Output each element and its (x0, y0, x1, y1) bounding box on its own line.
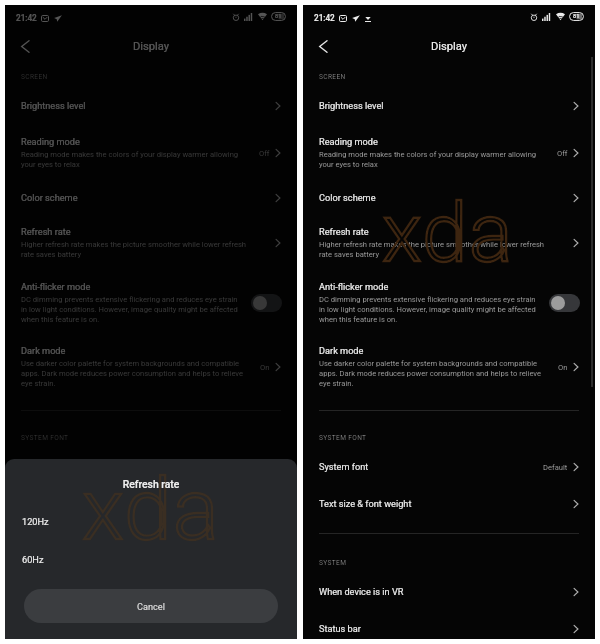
staticText: Cancel (137, 601, 165, 612)
button[interactable]: Color scheme (303, 190, 595, 206)
staticText: SYSTEM (319, 559, 347, 567)
button[interactable]: Brightness level (5, 98, 297, 114)
button[interactable]: Back (310, 33, 336, 59)
staticText: Anti-flicker mode (319, 281, 389, 292)
staticText: Text size & font weight (21, 498, 114, 509)
staticText: Brightness level (21, 100, 86, 111)
staticText: Anti-flicker mode (21, 281, 91, 292)
button[interactable]: Refresh rate (5, 224, 297, 262)
staticText: 21:42 (16, 13, 37, 23)
button[interactable]: Back (12, 33, 38, 59)
staticText: 120Hz (22, 516, 49, 527)
staticText: xda (82, 459, 220, 560)
button[interactable]: Reading mode (303, 134, 595, 172)
staticText: Higher refresh rate makes the picture sm… (319, 240, 545, 259)
staticText: SYSTEM (21, 559, 49, 567)
button[interactable]: System font (5, 459, 297, 475)
button[interactable]: Anti-flicker mode (303, 279, 595, 327)
button[interactable]: Anti-flicker mode toggle (549, 294, 580, 312)
staticText: Display (431, 40, 468, 53)
staticText: Color scheme (319, 192, 376, 203)
button[interactable]: Text size & font weight (5, 496, 297, 512)
button[interactable]: Dark mode (5, 343, 297, 391)
staticText: Reading mode (319, 136, 378, 147)
button[interactable]: System font (303, 459, 595, 475)
staticText: On (558, 363, 568, 372)
staticText: Refresh rate (21, 226, 71, 237)
staticText: Reading mode (21, 136, 80, 147)
button[interactable]: Status bar (5, 621, 297, 637)
staticText: DC dimming prevents extensive flickering… (319, 295, 536, 324)
button[interactable]: Anti-flicker mode toggle (251, 294, 282, 312)
staticText: On (260, 363, 270, 372)
button[interactable]: 120Hz (5, 510, 297, 544)
staticText: System font (319, 461, 369, 472)
staticText: Off (259, 149, 270, 158)
staticText: 21:42 (314, 13, 335, 23)
button[interactable]: Color scheme (5, 190, 297, 206)
button[interactable]: 60Hz (5, 548, 297, 582)
button[interactable]: Brightness level (303, 98, 595, 114)
staticText: Color scheme (21, 192, 78, 203)
staticText: Off (557, 149, 568, 158)
staticText: Reading mode makes the colors of your di… (319, 150, 537, 169)
staticText: 81 (573, 13, 580, 20)
button[interactable]: Status bar (303, 621, 595, 637)
staticText: SYSTEM FONT (21, 434, 69, 442)
staticText: Display (133, 40, 170, 53)
staticText: When device is in VR (319, 586, 404, 597)
staticText: 81 (275, 13, 282, 20)
button[interactable]: Reading mode (5, 134, 297, 172)
staticText: Use darker color palette for system back… (319, 359, 542, 388)
button[interactable]: Dark mode (303, 343, 595, 391)
button[interactable]: Refresh rate (303, 224, 595, 262)
staticText: Higher refresh rate makes the picture sm… (21, 240, 247, 259)
staticText: Status bar (319, 623, 361, 634)
staticText: When device is in VR (21, 586, 106, 597)
staticText: Brightness level (319, 100, 384, 111)
staticText: Reading mode makes the colors of your di… (21, 150, 239, 169)
staticText: Use darker color palette for system back… (21, 359, 244, 388)
button[interactable]: When device is in VR (303, 584, 595, 600)
staticText: Dark mode (319, 345, 364, 356)
button[interactable]: Text size & font weight (303, 496, 595, 512)
button[interactable]: When device is in VR (5, 584, 297, 600)
button[interactable]: Cancel (24, 589, 278, 623)
staticText: Dark mode (21, 345, 66, 356)
staticText: Text size & font weight (319, 498, 412, 509)
staticText: SYSTEM FONT (319, 434, 367, 442)
staticText: 60Hz (22, 554, 44, 565)
staticText: xda (382, 185, 514, 281)
staticText: Refresh rate (5, 478, 297, 490)
button[interactable]: Anti-flicker mode (5, 279, 297, 327)
staticText: Default (543, 463, 568, 472)
staticText: SCREEN (21, 73, 48, 81)
staticText: SCREEN (319, 73, 346, 81)
staticText: DC dimming prevents extensive flickering… (21, 295, 238, 324)
staticText: Refresh rate (319, 226, 369, 237)
